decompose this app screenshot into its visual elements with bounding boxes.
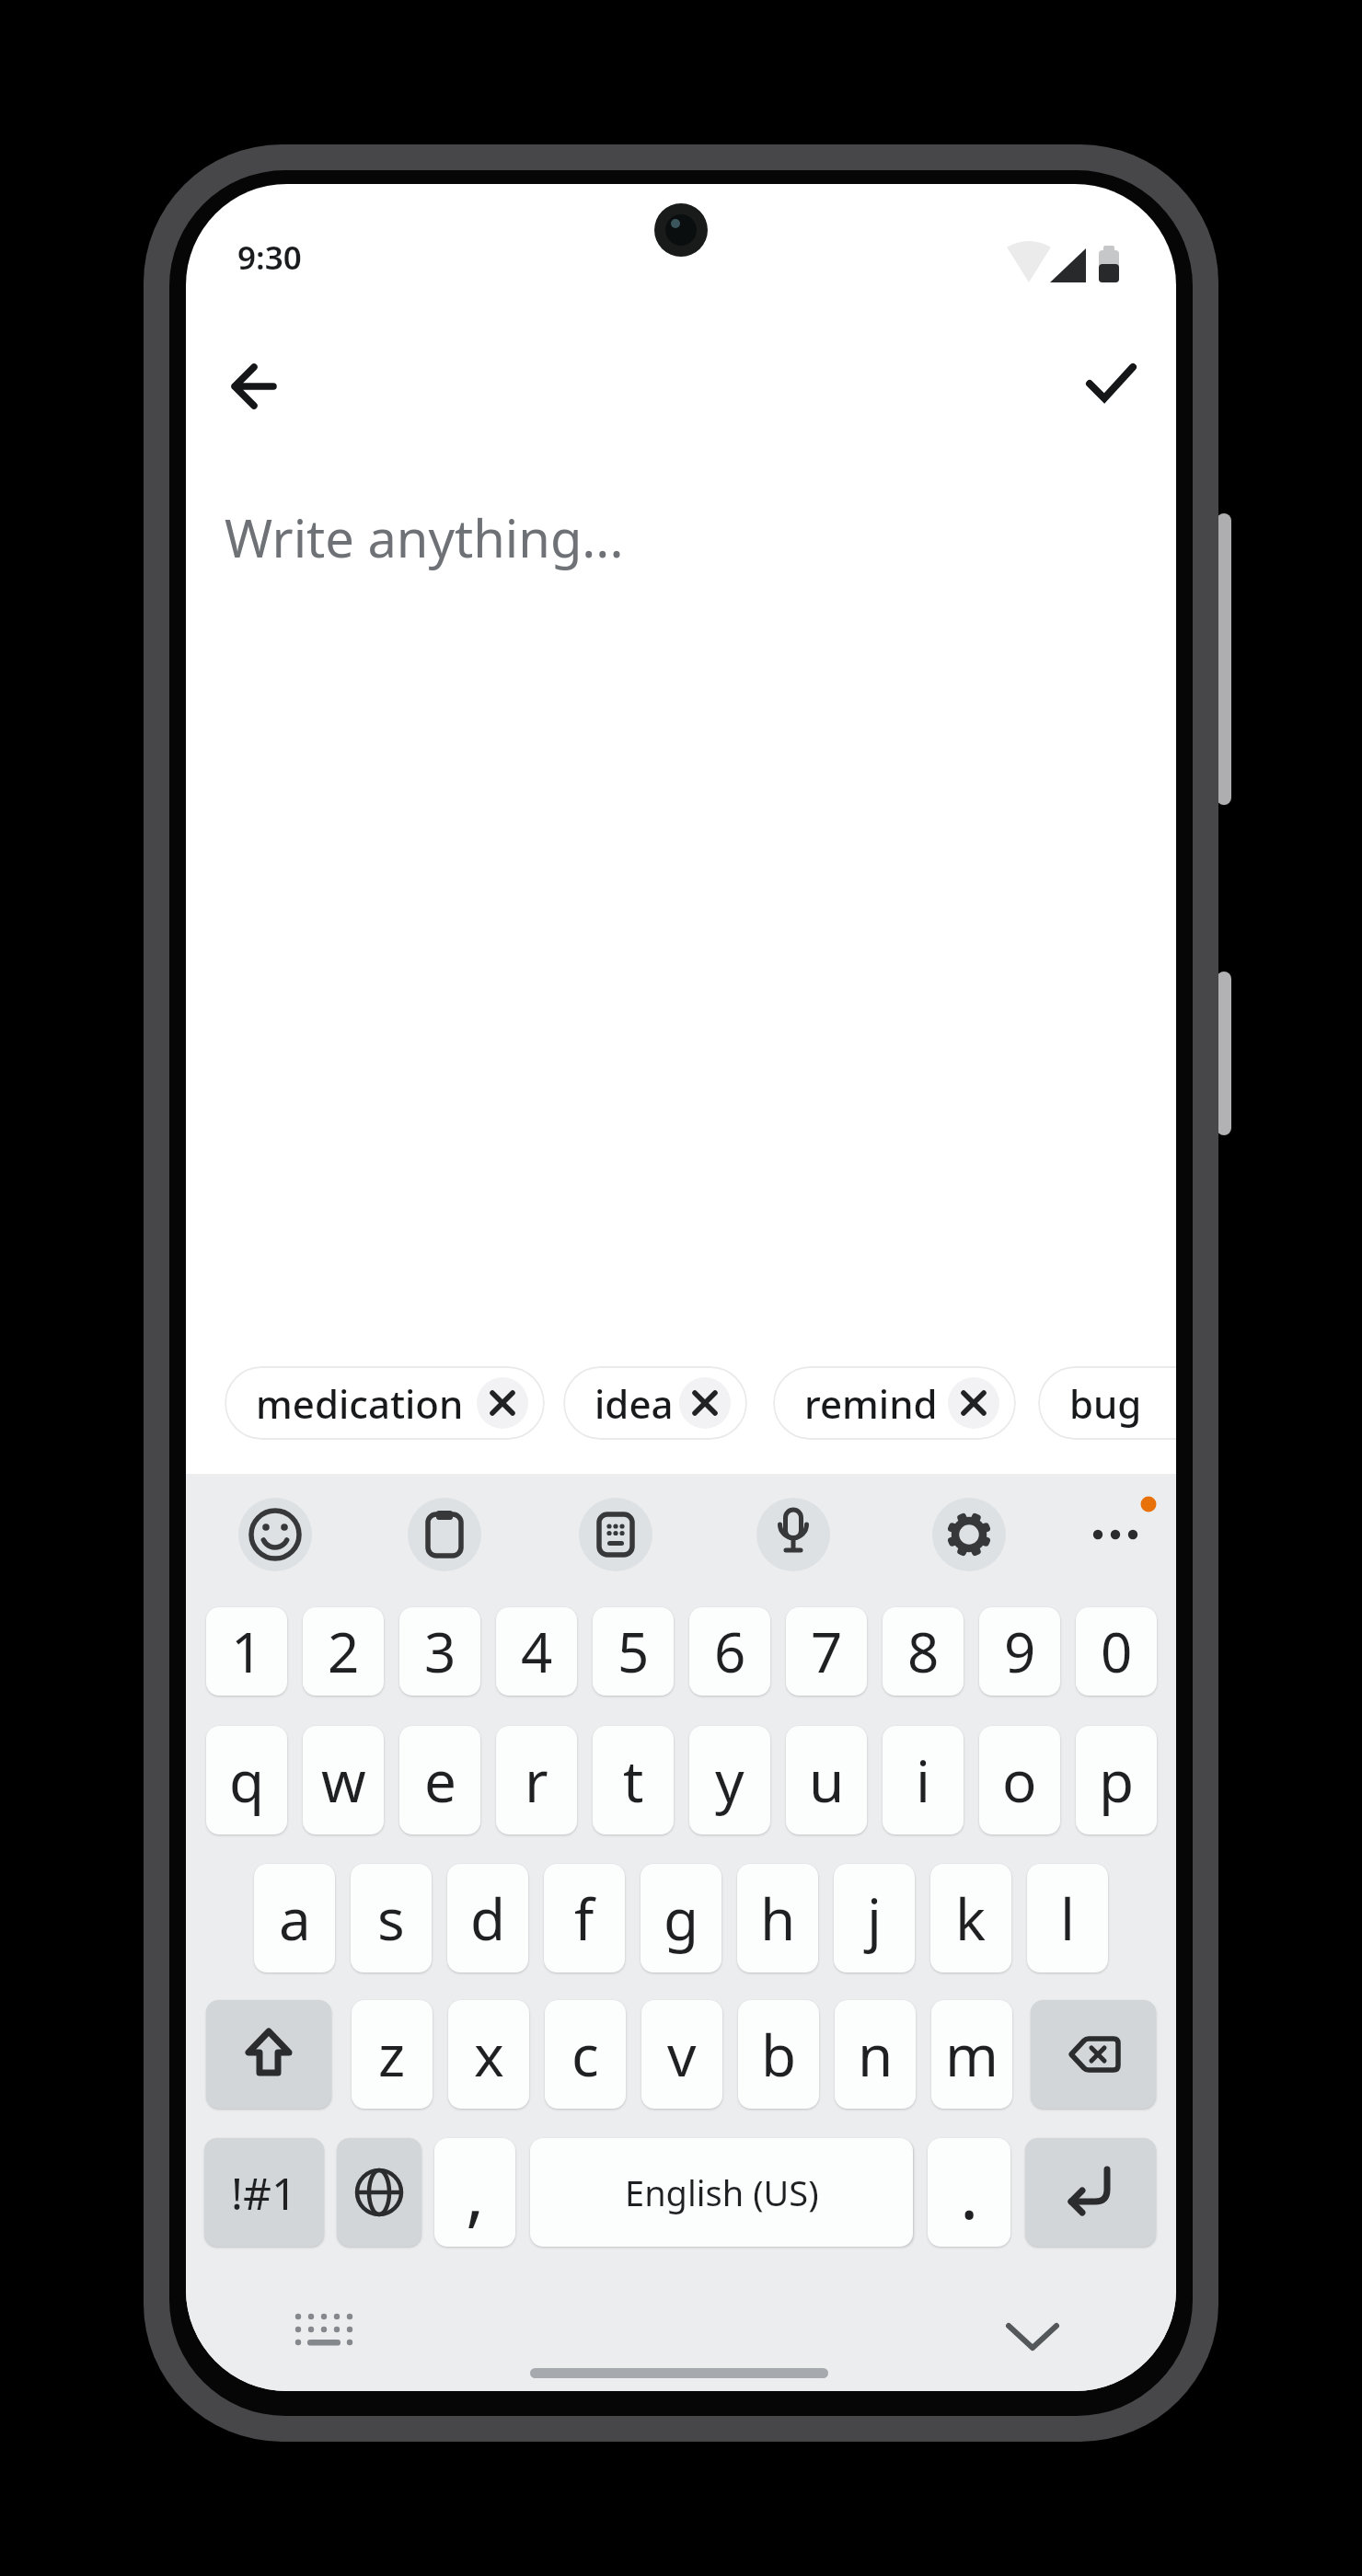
button[interactable]: .: [928, 2138, 1010, 2247]
staticText: k: [955, 1880, 987, 1957]
button[interactable]: s: [351, 1864, 432, 1972]
staticText: v: [667, 2016, 697, 2093]
button[interactable]: bug: [1038, 1366, 1176, 1440]
button[interactable]: i: [883, 1726, 964, 1834]
button[interactable]: t: [593, 1726, 674, 1834]
button[interactable]: [756, 1498, 830, 1571]
button[interactable]: [1070, 343, 1151, 424]
staticText: ,: [466, 2145, 485, 2240]
staticText: 2: [328, 1614, 360, 1689]
staticText: j: [867, 1880, 882, 1957]
button[interactable]: 4: [496, 1607, 577, 1696]
staticText: x: [474, 2016, 504, 2093]
staticText: n: [858, 2016, 894, 2093]
button[interactable]: n: [835, 2000, 916, 2109]
button[interactable]: English (US): [530, 2138, 913, 2247]
staticText: 7: [811, 1614, 843, 1689]
staticText: 9:30: [237, 236, 302, 280]
button[interactable]: [238, 1498, 312, 1571]
button[interactable]: u: [786, 1726, 867, 1834]
button[interactable]: q: [206, 1726, 287, 1834]
staticText: bug: [1069, 1377, 1142, 1430]
button[interactable]: y: [689, 1726, 770, 1834]
staticText: !#1: [231, 2163, 297, 2223]
button[interactable]: 3: [399, 1607, 480, 1696]
staticText: 3: [424, 1614, 456, 1689]
button[interactable]: m: [931, 2000, 1012, 2109]
staticText: r: [525, 1742, 548, 1819]
staticText: t: [623, 1742, 644, 1819]
button[interactable]: medication: [225, 1366, 545, 1440]
staticText: medication: [256, 1377, 464, 1430]
button[interactable]: z: [352, 2000, 433, 2109]
button[interactable]: 6: [689, 1607, 770, 1696]
button[interactable]: remind: [773, 1366, 1016, 1440]
button[interactable]: [214, 346, 294, 427]
staticText: q: [229, 1742, 265, 1819]
staticText: h: [760, 1880, 796, 1957]
button[interactable]: 2: [303, 1607, 384, 1696]
button[interactable]: [408, 1498, 481, 1571]
staticText: m: [945, 2016, 998, 2093]
staticText: b: [761, 2016, 797, 2093]
button[interactable]: b: [738, 2000, 819, 2109]
button[interactable]: l: [1027, 1864, 1108, 1972]
button[interactable]: 7: [786, 1607, 867, 1696]
staticText: English (US): [625, 2168, 819, 2216]
staticText: 9: [1004, 1614, 1036, 1689]
staticText: o: [1002, 1742, 1037, 1819]
button[interactable]: idea: [563, 1366, 747, 1440]
staticText: w: [321, 1742, 366, 1819]
staticText: 5: [618, 1614, 650, 1689]
button[interactable]: e: [399, 1726, 480, 1834]
button[interactable]: a: [254, 1864, 335, 1972]
staticText: 4: [521, 1614, 553, 1689]
staticText: z: [378, 2016, 406, 2093]
button[interactable]: w: [303, 1726, 384, 1834]
staticText: .: [960, 2145, 979, 2240]
button[interactable]: 9: [979, 1607, 1060, 1696]
staticText: f: [574, 1880, 594, 1957]
staticText: a: [279, 1880, 311, 1957]
staticText: Write anything...: [225, 502, 624, 572]
staticText: u: [809, 1742, 845, 1819]
button[interactable]: 0: [1076, 1607, 1157, 1696]
button[interactable]: [932, 1498, 1006, 1571]
staticText: g: [664, 1880, 699, 1957]
staticText: e: [424, 1742, 456, 1819]
button[interactable]: 5: [593, 1607, 674, 1696]
button[interactable]: [579, 1498, 652, 1571]
button[interactable]: 8: [883, 1607, 964, 1696]
button[interactable]: p: [1076, 1726, 1157, 1834]
button[interactable]: !#1: [204, 2138, 324, 2247]
button[interactable]: [206, 2000, 331, 2109]
staticText: remind: [804, 1377, 938, 1430]
staticText: i: [916, 1742, 930, 1819]
button[interactable]: 1: [206, 1607, 287, 1696]
staticText: c: [571, 2016, 599, 2093]
staticText: d: [470, 1880, 506, 1957]
staticText: idea: [594, 1377, 674, 1430]
button[interactable]: [1031, 2000, 1156, 2109]
button[interactable]: c: [545, 2000, 626, 2109]
button[interactable]: k: [930, 1864, 1011, 1972]
staticText: 8: [907, 1614, 940, 1689]
button[interactable]: r: [496, 1726, 577, 1834]
button[interactable]: h: [737, 1864, 818, 1972]
button[interactable]: j: [834, 1864, 915, 1972]
button[interactable]: f: [544, 1864, 625, 1972]
button[interactable]: [996, 2309, 1069, 2364]
button[interactable]: ,: [434, 2138, 515, 2247]
staticText: 0: [1101, 1614, 1133, 1689]
staticText: y: [715, 1742, 744, 1819]
staticText: 1: [231, 1614, 263, 1689]
staticText: p: [1099, 1742, 1135, 1819]
button[interactable]: [1025, 2138, 1156, 2247]
button[interactable]: d: [447, 1864, 528, 1972]
staticText: 6: [714, 1614, 746, 1689]
button[interactable]: g: [641, 1864, 721, 1972]
button[interactable]: x: [448, 2000, 529, 2109]
button[interactable]: [337, 2138, 421, 2247]
button[interactable]: o: [979, 1726, 1060, 1834]
button[interactable]: v: [641, 2000, 722, 2109]
